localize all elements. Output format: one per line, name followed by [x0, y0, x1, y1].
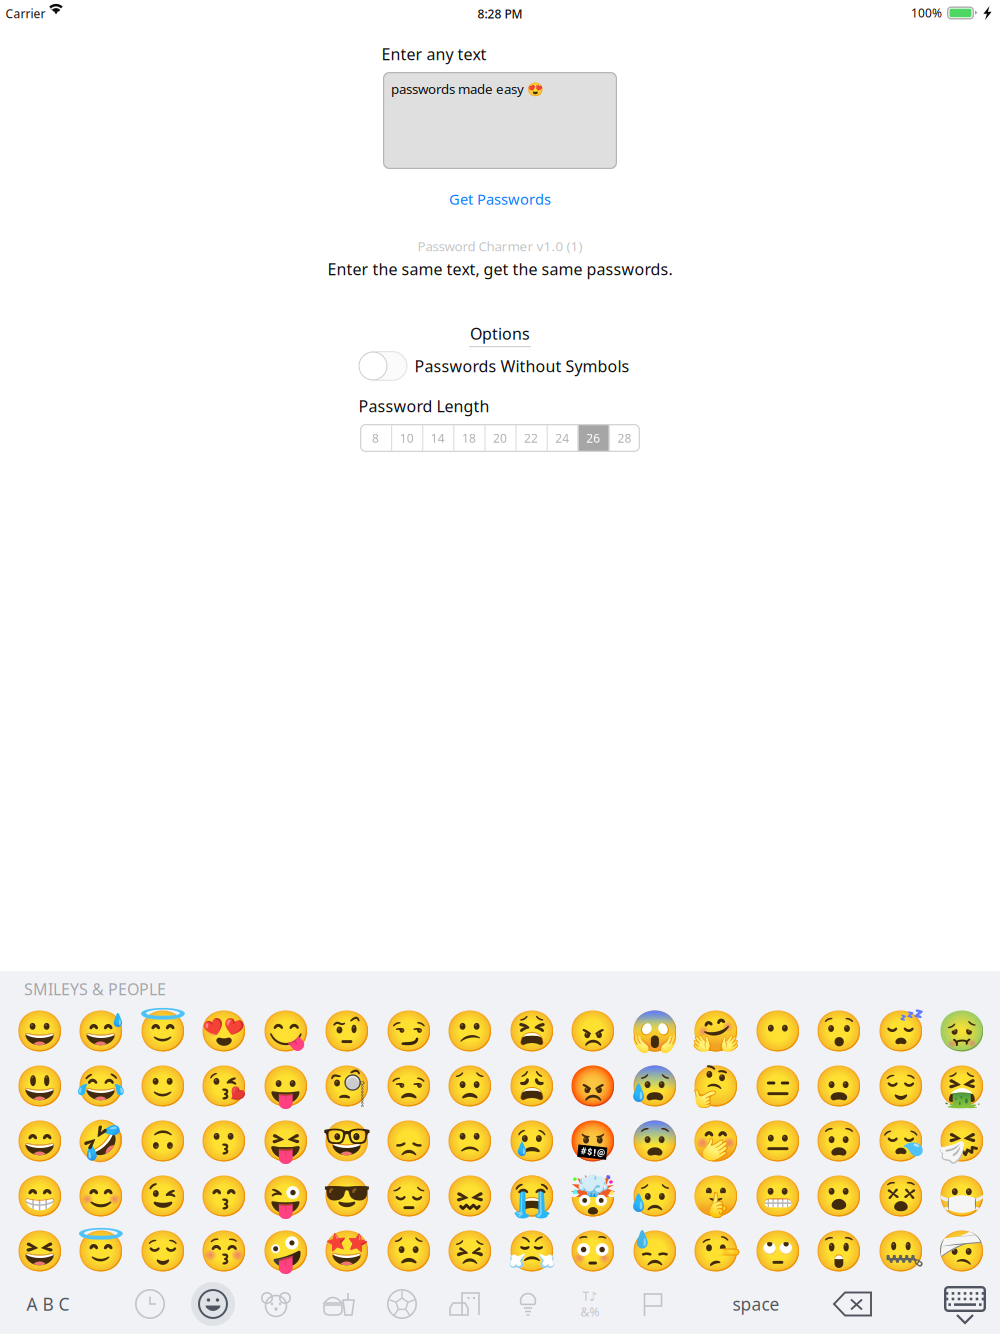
- button[interactable]: 😄: [9, 1114, 70, 1169]
- button[interactable]: space: [686, 1277, 826, 1331]
- button[interactable]: 🤭: [685, 1114, 747, 1169]
- button[interactable]: 😉: [132, 1169, 193, 1224]
- button[interactable]: 8: [360, 424, 391, 452]
- button[interactable]: 🙄: [747, 1224, 808, 1279]
- button[interactable]: 😌: [870, 1059, 931, 1114]
- button[interactable]: 😨: [624, 1114, 685, 1169]
- button[interactable]: 24: [547, 424, 578, 452]
- button[interactable]: 28: [609, 424, 640, 452]
- button[interactable]: 🙁: [439, 1114, 501, 1169]
- button[interactable]: 😰: [624, 1059, 685, 1114]
- button[interactable]: 🤣: [70, 1114, 132, 1169]
- button[interactable]: 😤: [501, 1224, 562, 1279]
- button[interactable]: 🤓: [316, 1114, 378, 1169]
- button[interactable]: 😮: [808, 1169, 870, 1224]
- button[interactable]: Travel and places: [437, 1277, 493, 1331]
- button[interactable]: 😫: [501, 1004, 562, 1059]
- button[interactable]: 😙: [193, 1169, 255, 1224]
- button[interactable]: 😖: [439, 1169, 501, 1224]
- button[interactable]: Animals and nature: [248, 1277, 304, 1331]
- button[interactable]: 🤔: [685, 1059, 747, 1114]
- button[interactable]: 😃: [9, 1059, 70, 1114]
- button[interactable]: 😥: [624, 1169, 685, 1224]
- button[interactable]: 😍: [193, 1004, 255, 1059]
- button[interactable]: Activity: [374, 1277, 430, 1331]
- button[interactable]: 🧐: [316, 1059, 378, 1114]
- button[interactable]: 😲: [808, 1224, 870, 1279]
- button[interactable]: 😞: [378, 1114, 439, 1169]
- button[interactable]: 😐: [747, 1114, 808, 1169]
- button[interactable]: 😑: [747, 1059, 808, 1114]
- button[interactable]: 😜: [255, 1169, 316, 1224]
- button[interactable]: 🤥: [685, 1224, 747, 1279]
- button[interactable]: 😊: [70, 1169, 132, 1224]
- button[interactable]: Get Passwords: [420, 184, 580, 214]
- button[interactable]: 22: [515, 424, 547, 452]
- button[interactable]: A B C: [0, 1277, 96, 1331]
- button[interactable]: 🤬: [562, 1114, 624, 1169]
- button[interactable]: 🤯: [562, 1169, 624, 1224]
- button[interactable]: 😟: [378, 1224, 439, 1279]
- button[interactable]: 😋: [255, 1004, 316, 1059]
- button[interactable]: 🤫: [685, 1169, 747, 1224]
- button[interactable]: 🤨: [316, 1004, 378, 1059]
- button[interactable]: 🤕: [931, 1224, 993, 1279]
- button[interactable]: 😚: [193, 1224, 255, 1279]
- button[interactable]: 10: [391, 424, 422, 452]
- button[interactable]: 🙃: [132, 1114, 193, 1169]
- button[interactable]: 😧: [808, 1114, 870, 1169]
- button[interactable]: 😦: [808, 1059, 870, 1114]
- button[interactable]: 😪: [870, 1114, 931, 1169]
- button[interactable]: 18: [453, 424, 484, 452]
- button[interactable]: 😓: [624, 1224, 685, 1279]
- button[interactable]: 😘: [193, 1059, 255, 1114]
- button[interactable]: 😕: [439, 1004, 501, 1059]
- button[interactable]: 😭: [501, 1169, 562, 1224]
- button[interactable]: 26: [578, 424, 609, 452]
- button[interactable]: 😳: [562, 1224, 624, 1279]
- button[interactable]: Food and drink: [311, 1277, 367, 1331]
- button[interactable]: 😇: [132, 1004, 193, 1059]
- button[interactable]: 😏: [378, 1004, 439, 1059]
- button[interactable]: Dismiss keyboard: [930, 1278, 1000, 1332]
- button[interactable]: 🤧: [931, 1114, 993, 1169]
- button[interactable]: Recently used: [122, 1277, 178, 1331]
- button[interactable]: 😎: [316, 1169, 378, 1224]
- button[interactable]: 🤢: [931, 1004, 993, 1059]
- button[interactable]: 😗: [193, 1114, 255, 1169]
- button[interactable]: 😔: [378, 1169, 439, 1224]
- button[interactable]: 😆: [9, 1224, 70, 1279]
- button[interactable]: 😵: [870, 1169, 931, 1224]
- button[interactable]: 😝: [255, 1114, 316, 1169]
- button[interactable]: Flags: [626, 1277, 682, 1331]
- button[interactable]: 😒: [378, 1059, 439, 1114]
- button[interactable]: 🤐: [870, 1224, 931, 1279]
- button[interactable]: 😌: [132, 1224, 193, 1279]
- button[interactable]: 😬: [747, 1169, 808, 1224]
- button[interactable]: 😅: [70, 1004, 132, 1059]
- button[interactable]: 😱: [624, 1004, 685, 1059]
- button[interactable]: 😢: [501, 1114, 562, 1169]
- button[interactable]: 🤩: [316, 1224, 378, 1279]
- button[interactable]: 😂: [70, 1059, 132, 1114]
- button[interactable]: 😟: [439, 1059, 501, 1114]
- button[interactable]: 🙂: [132, 1059, 193, 1114]
- button[interactable]: 20: [484, 424, 516, 452]
- button[interactable]: 😯: [808, 1004, 870, 1059]
- button[interactable]: 😷: [931, 1169, 993, 1224]
- button[interactable]: Symbols: [562, 1277, 618, 1331]
- button[interactable]: 😁: [9, 1169, 70, 1224]
- button[interactable]: 😠: [562, 1004, 624, 1059]
- button[interactable]: Delete: [818, 1277, 888, 1331]
- button[interactable]: 🤪: [255, 1224, 316, 1279]
- button[interactable]: 😩: [501, 1059, 562, 1114]
- button[interactable]: 😶: [747, 1004, 808, 1059]
- button[interactable]: 🤗: [685, 1004, 747, 1059]
- button[interactable]: 14: [422, 424, 453, 452]
- button[interactable]: Passwords Without Symbols: [358, 351, 407, 381]
- button[interactable]: 😴: [870, 1004, 931, 1059]
- button[interactable]: 😛: [255, 1059, 316, 1114]
- button[interactable]: Objects: [500, 1277, 556, 1331]
- button[interactable]: Smileys and people: [185, 1277, 241, 1331]
- button[interactable]: 😡: [562, 1059, 624, 1114]
